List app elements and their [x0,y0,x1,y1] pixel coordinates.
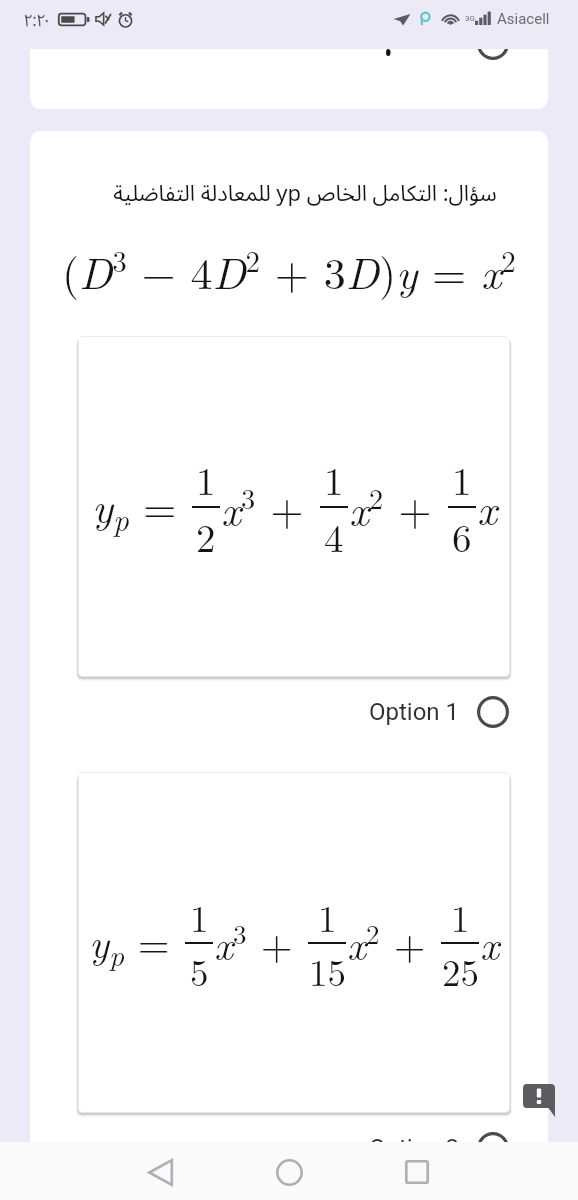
staticText: 4 [324,508,344,563]
button[interactable]: Report question [523,1084,557,1118]
staticText: 5 [190,944,209,996]
staticText: x3 [221,477,256,538]
button[interactable]: Back [134,1146,186,1198]
staticText: yp = [92,475,191,540]
staticText: 1 [452,451,472,506]
staticText: 1 [324,451,344,506]
staticText: x [477,477,497,538]
staticText: x2 [347,914,380,972]
staticText: x [480,914,500,972]
button[interactable]: Home [263,1146,315,1198]
staticText: ٢:٢٠ [24,8,50,31]
button[interactable]: Option 2 [30,1127,509,1169]
staticText: Option 1 [369,698,460,726]
staticText: + [247,914,307,972]
staticText: سؤال: التكامل الخاص yp للمعادلة التفاضلي… [46,171,548,217]
staticText: 2 [196,508,216,563]
staticText: 15 [309,944,346,996]
button[interactable]: Recent apps [391,1146,443,1198]
staticText: x2 [349,477,384,538]
staticText: + [384,477,447,538]
staticText: yp = [89,912,184,974]
staticText: + [380,914,440,972]
staticText: Asiacell [497,10,550,28]
staticText: 25 [442,944,479,996]
staticText: x3 [214,914,247,972]
staticText: Option 2 [369,1134,460,1162]
button[interactable]: yp = [78,772,510,1113]
staticText: + [256,477,319,538]
staticText: 1 [196,451,216,506]
staticText: 1 [451,890,470,942]
staticText: 3G [465,14,475,23]
staticText: 1 [318,890,337,942]
button[interactable]: yp = [78,336,510,677]
staticText: 1 [190,890,209,942]
staticText: 6 [452,508,472,563]
button[interactable]: Option 1 [30,691,509,733]
staticText: (D3 − 4D2 + 3D)y = x2 [62,239,516,302]
